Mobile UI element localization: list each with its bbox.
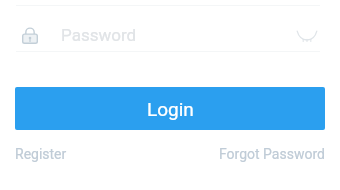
button[interactable]: Register	[15, 139, 67, 169]
staticText: Register	[15, 146, 67, 162]
button[interactable]: Forgot Password	[219, 139, 325, 169]
staticText: Password	[61, 25, 137, 45]
button[interactable]: Login	[15, 87, 325, 130]
button[interactable]: Show password	[294, 22, 320, 48]
staticText: Login	[147, 98, 194, 120]
staticText: Forgot Password	[219, 146, 325, 162]
button[interactable]: Password field	[16, 18, 286, 51]
